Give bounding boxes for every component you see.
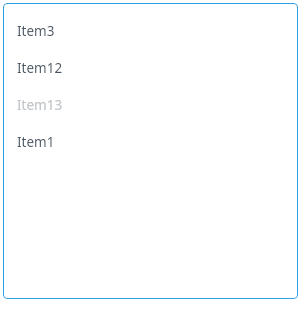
staticText: Item3 xyxy=(17,22,55,40)
staticText: Item13 xyxy=(17,96,63,114)
staticText: Item12 xyxy=(17,59,63,77)
staticText: Item1 xyxy=(17,133,55,151)
button: Item13 xyxy=(3,86,298,123)
button[interactable]: Item12 xyxy=(3,49,298,86)
button[interactable]: Item1 xyxy=(3,123,298,160)
button[interactable]: Item3 xyxy=(3,12,298,49)
